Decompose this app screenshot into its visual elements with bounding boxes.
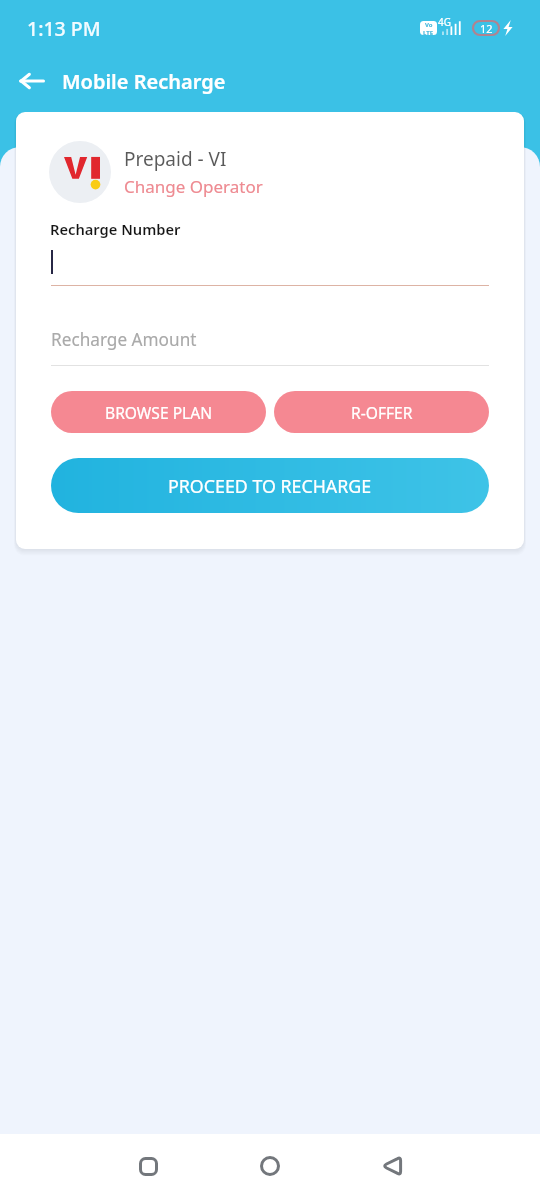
button[interactable]: Back bbox=[10, 59, 54, 103]
button[interactable]: Recents bbox=[124, 1142, 172, 1190]
button[interactable]: Change Operator bbox=[124, 175, 263, 198]
staticText: Recharge Amount bbox=[51, 328, 197, 351]
button[interactable]: Recharge Amount bbox=[51, 324, 489, 366]
button[interactable]: R-OFFER bbox=[274, 391, 489, 433]
staticText: 12 bbox=[480, 21, 493, 35]
staticText: 4G bbox=[438, 15, 451, 29]
staticText: Prepaid - VI bbox=[124, 146, 227, 172]
staticText: PROCEED TO RECHARGE bbox=[168, 474, 372, 498]
staticText: 1:13 PM bbox=[27, 15, 101, 42]
button[interactable] bbox=[51, 243, 489, 286]
staticText: Mobile Recharge bbox=[62, 68, 226, 95]
button[interactable]: BROWSE PLAN bbox=[51, 391, 266, 433]
staticText: BROWSE PLAN bbox=[105, 402, 213, 423]
button[interactable]: PROCEED TO RECHARGE bbox=[51, 458, 489, 513]
staticText: LTE bbox=[423, 29, 434, 35]
button[interactable]: Back bbox=[368, 1142, 416, 1190]
button[interactable]: Home bbox=[246, 1142, 294, 1190]
staticText: R-OFFER bbox=[351, 402, 413, 423]
staticText: Vo bbox=[425, 21, 433, 29]
staticText: Recharge Number bbox=[50, 219, 181, 239]
